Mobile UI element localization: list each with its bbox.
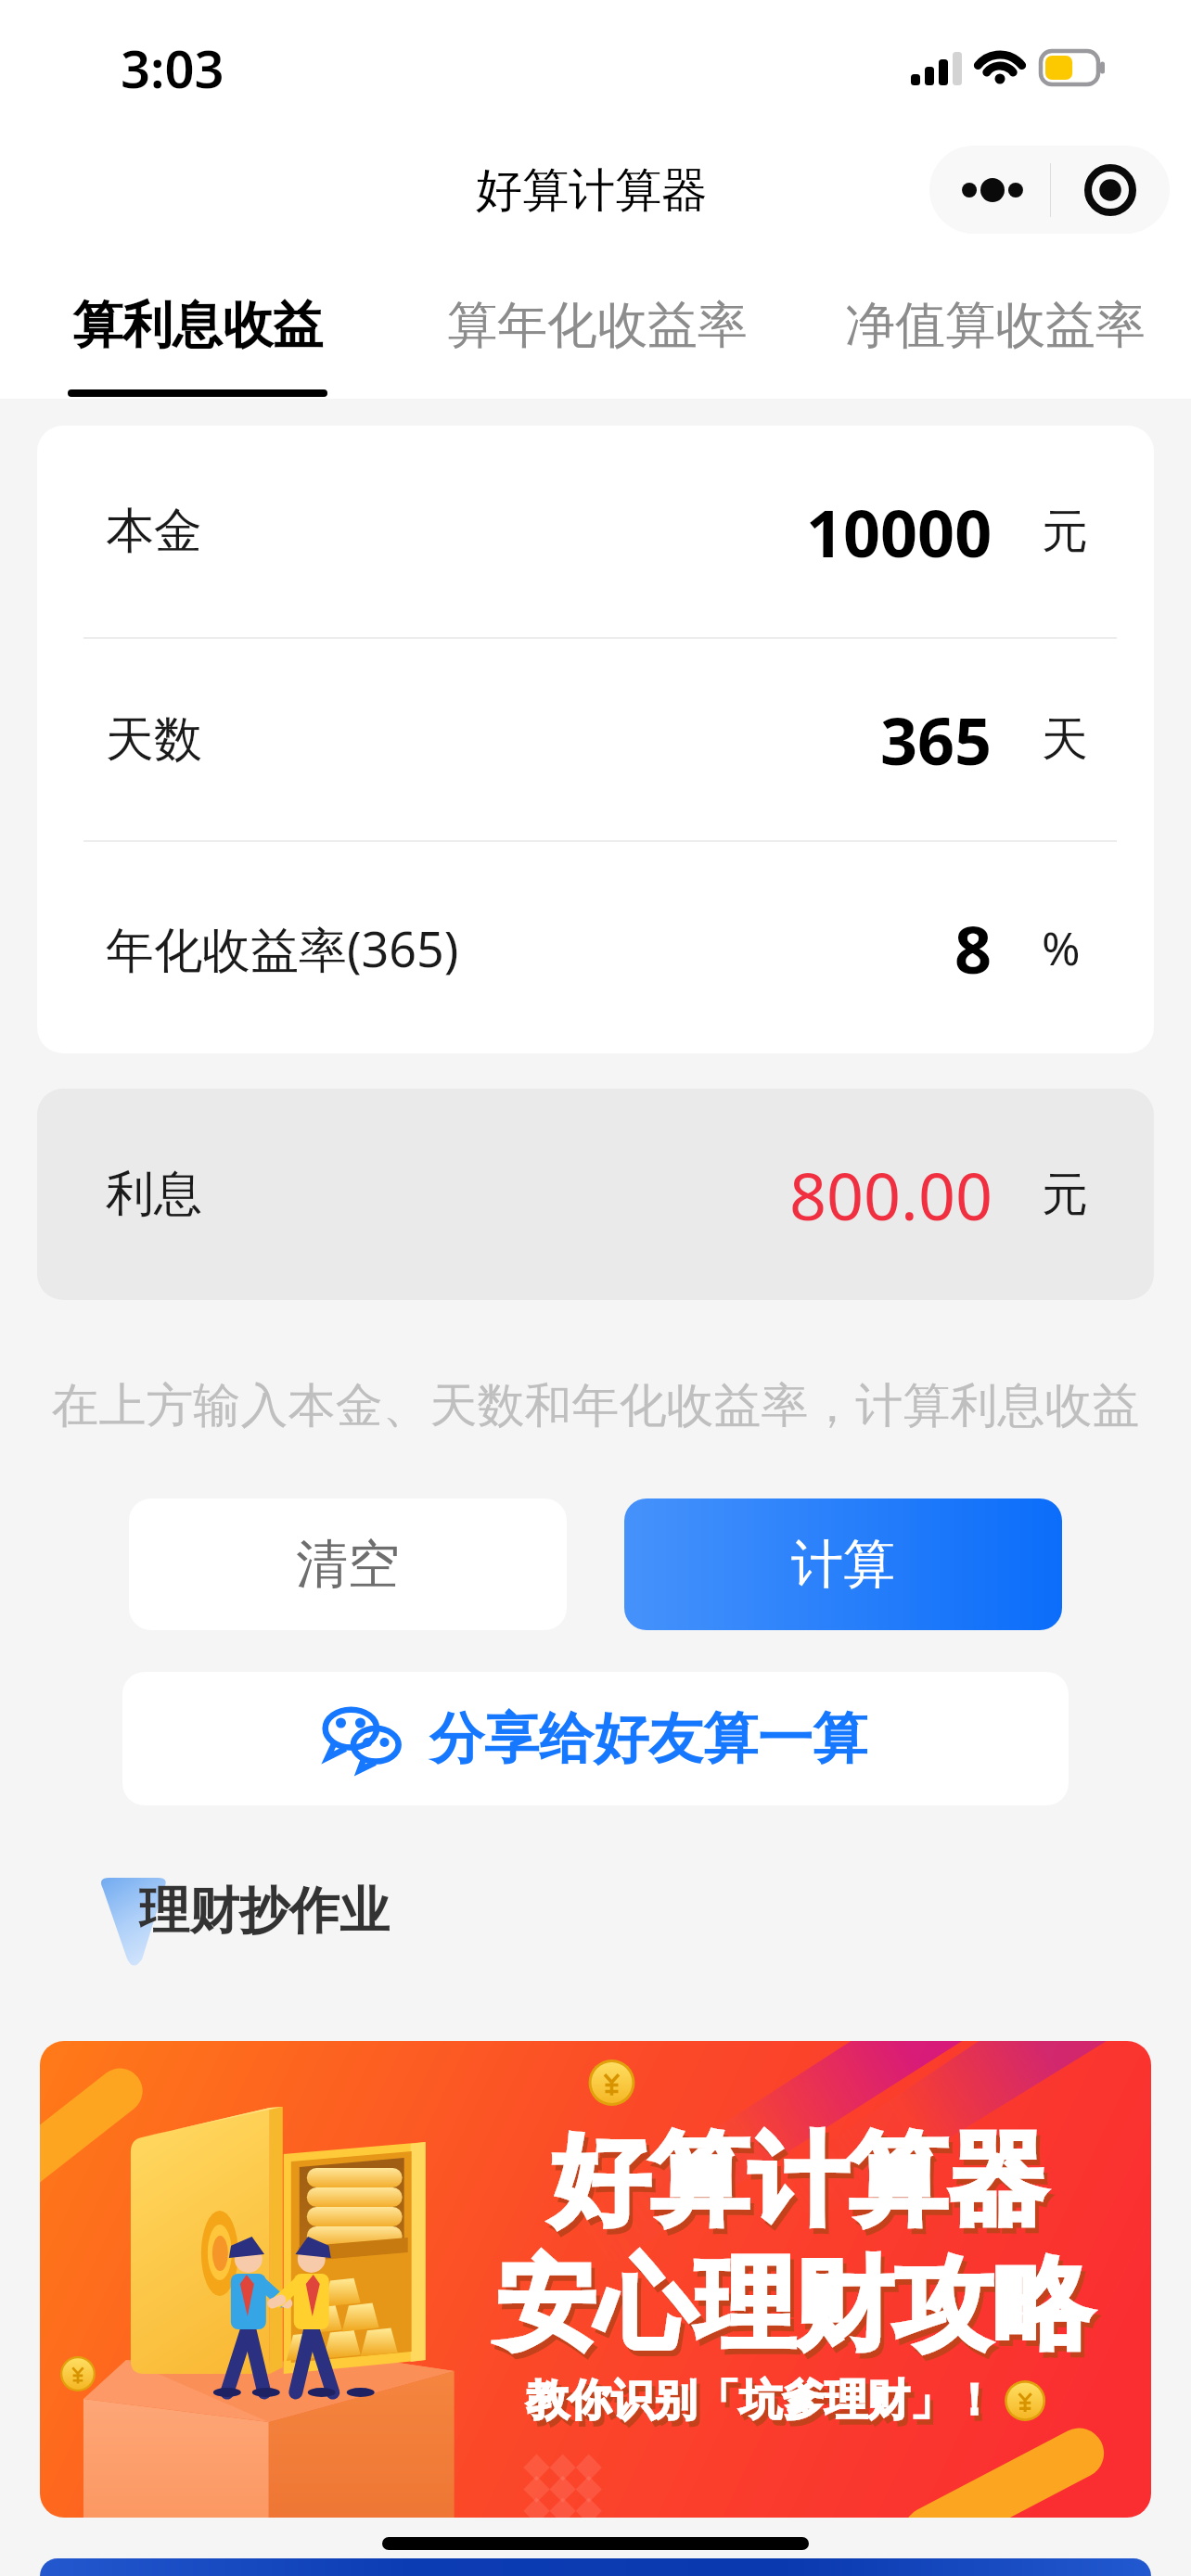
staticText: 天数: [106, 709, 202, 771]
button[interactable]: 好算计算器 安心理财攻略 banner: [40, 2041, 1151, 2518]
button[interactable]: Next banner: [40, 2558, 1151, 2576]
staticText: 安心理财攻略: [496, 2243, 1092, 2368]
staticText: 教你识别「坑爹理财」！: [526, 2374, 995, 2428]
staticText: 算年化收益率: [447, 294, 748, 357]
staticText: 净值算收益率: [845, 294, 1146, 357]
button[interactable]: 算利息收益: [0, 250, 395, 399]
staticText: 8: [954, 904, 992, 992]
staticText: 好算计算器: [476, 161, 708, 220]
staticText: 计算: [791, 1532, 895, 1598]
staticText: 元: [1042, 1166, 1088, 1224]
button[interactable]: 本金: [37, 426, 1154, 637]
staticText: 清空: [296, 1532, 400, 1598]
button[interactable]: More options: [929, 146, 1050, 234]
staticText: 安心理财攻略: [500, 2249, 1095, 2374]
button[interactable]: 净值算收益率: [799, 250, 1191, 399]
staticText: 365: [880, 695, 992, 784]
staticText: 分享给好友算一算: [429, 1704, 867, 1773]
staticText: 元: [1042, 503, 1088, 561]
button[interactable]: Close mini program: [1051, 146, 1170, 234]
button[interactable]: 分享给好友算一算: [122, 1672, 1069, 1805]
button[interactable]: 清空: [129, 1498, 567, 1630]
staticText: 好算计算器: [550, 2119, 1046, 2244]
staticText: %: [1042, 916, 1081, 979]
staticText: 本金: [106, 501, 202, 562]
staticText: 好算计算器: [554, 2124, 1050, 2250]
staticText: 天: [1042, 710, 1088, 769]
staticText: 10000: [806, 488, 992, 576]
staticText: 在上方输入本金、天数和年化收益率，计算利息收益: [0, 1376, 1191, 1435]
button[interactable]: 算年化收益率: [395, 250, 799, 399]
staticText: 教你识别「坑爹理财」！: [530, 2379, 999, 2433]
staticText: 算利息收益: [72, 294, 323, 357]
button[interactable]: 年化收益率(365): [37, 842, 1154, 1053]
staticText: 理财抄作业: [139, 1880, 390, 1943]
staticText: 800.00: [789, 1151, 992, 1239]
staticText: 3:03: [121, 32, 224, 103]
staticText: 年化收益率(365): [106, 915, 459, 981]
button[interactable]: 天数: [37, 639, 1154, 840]
staticText: 利息: [106, 1164, 202, 1225]
button[interactable]: 计算: [624, 1498, 1062, 1630]
